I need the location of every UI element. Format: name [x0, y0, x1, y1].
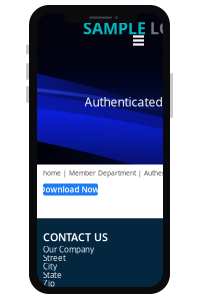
staticText: State	[43, 269, 62, 280]
staticText: LOGO	[146, 17, 197, 39]
button[interactable]: Menu	[131, 34, 146, 47]
staticText: Our Company	[43, 244, 94, 255]
staticText: CONTACT US	[43, 230, 108, 244]
staticText: home | Member Department | Authenticat	[43, 168, 179, 177]
staticText: SAMPLE	[83, 17, 146, 39]
staticText: City	[43, 261, 57, 272]
staticText: Authenticated S	[84, 94, 172, 110]
staticText: Zip	[43, 278, 55, 289]
staticText: Street	[43, 252, 66, 263]
button[interactable]: Download Now!	[43, 183, 98, 195]
staticText: Download Now!	[39, 184, 101, 195]
